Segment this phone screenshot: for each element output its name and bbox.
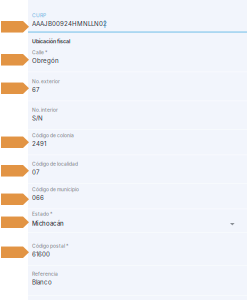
button[interactable]: Estado * (28, 211, 247, 233)
staticText: 066 (32, 194, 44, 201)
staticText: 2491 (32, 140, 46, 147)
staticText: Código de localidad (32, 161, 78, 167)
staticText: 07 (32, 168, 39, 176)
staticText: No. interior (32, 107, 58, 113)
staticText: Estado * (32, 211, 52, 217)
staticText: 61600 (32, 250, 50, 258)
staticText: Código de colonia (32, 132, 74, 138)
staticText: AAAJB00924HMNLLN02 (32, 20, 107, 27)
staticText: No. exterior (32, 78, 60, 84)
staticText: Ubicación fiscal (32, 38, 70, 44)
button[interactable]: CURP (28, 0, 247, 33)
staticText: Referencia (32, 271, 58, 277)
staticText: CURP (32, 12, 46, 18)
staticText: Código de municipio (32, 186, 79, 192)
button[interactable]: Código de municipio (28, 186, 247, 209)
button[interactable]: Código postal * (28, 243, 247, 266)
staticText: Blanco (32, 278, 52, 286)
button[interactable]: Referencia (28, 271, 247, 296)
staticText: 67 (32, 86, 39, 93)
button[interactable]: Código de localidad (28, 161, 247, 184)
staticText: S/N (32, 114, 43, 122)
staticText: Obregón (32, 57, 59, 64)
button[interactable]: No. interior (28, 107, 247, 130)
button[interactable]: Calle * (28, 49, 247, 72)
staticText: Michoacán (32, 220, 64, 227)
staticText: Calle * (32, 49, 47, 55)
button[interactable]: No. exterior (28, 78, 247, 101)
button[interactable]: Código de colonia (28, 132, 247, 155)
staticText: Código postal * (32, 243, 68, 249)
